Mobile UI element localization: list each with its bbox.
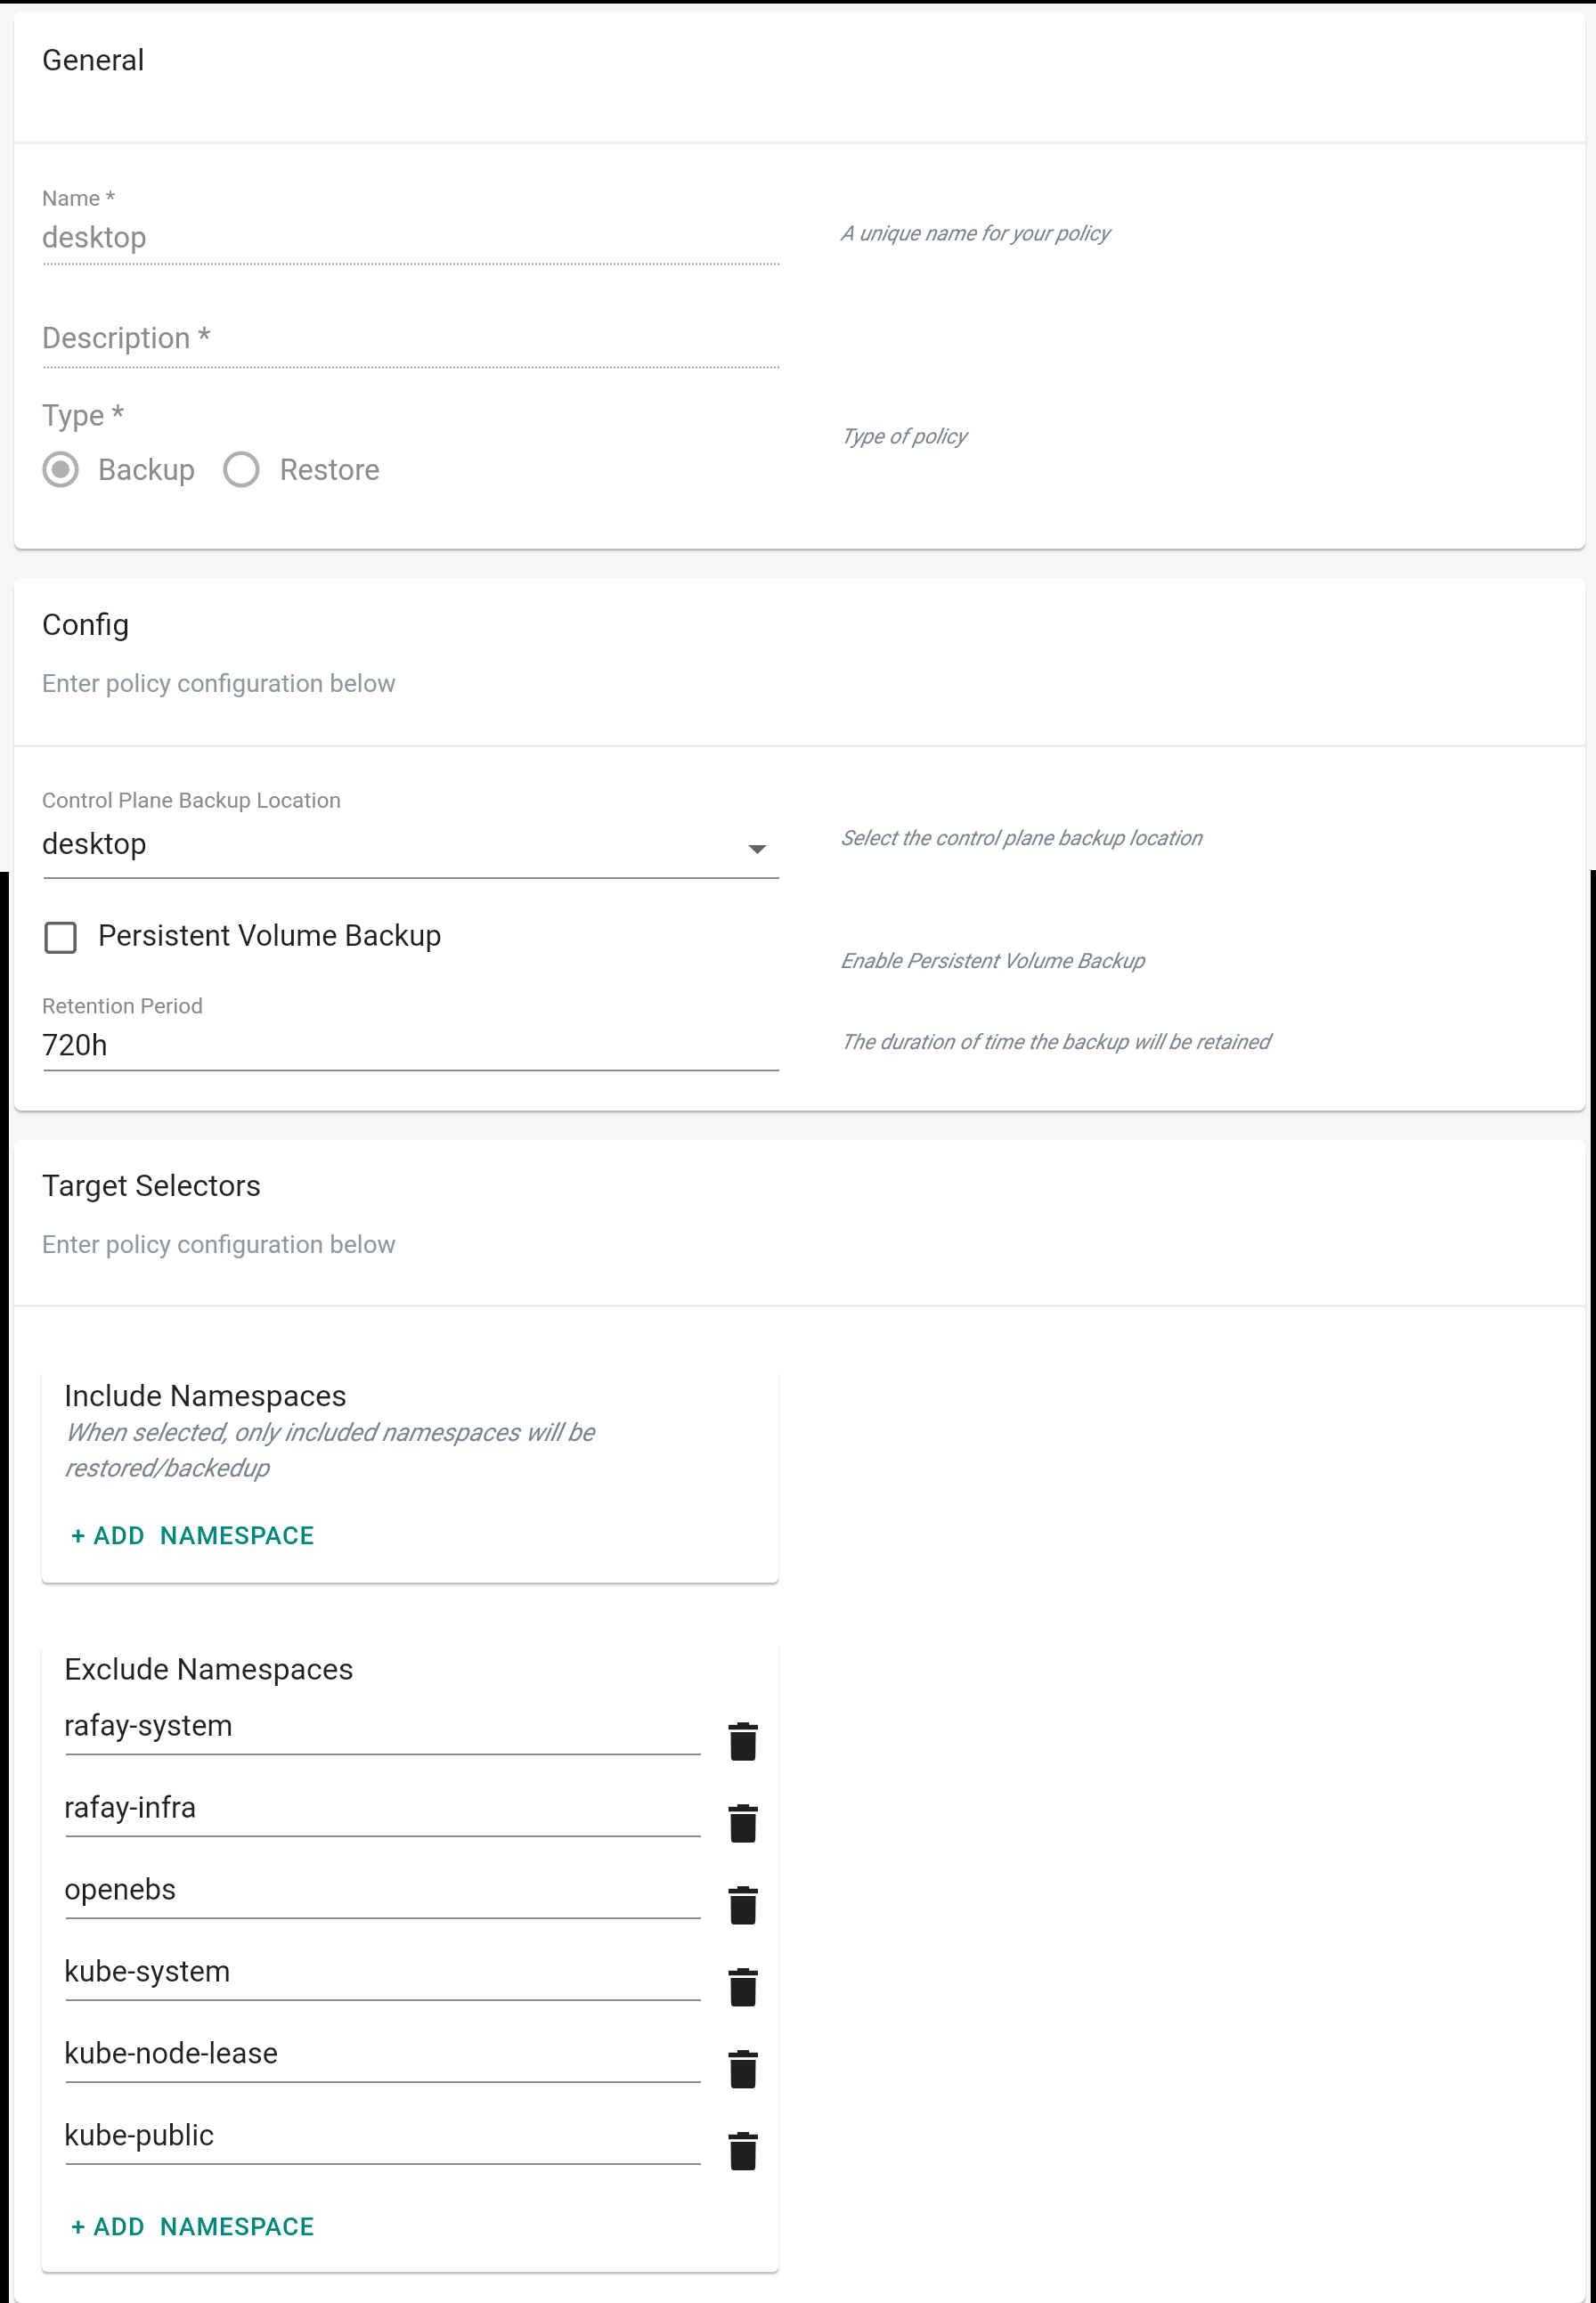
staticText: + ADD NAMESPACE xyxy=(71,1521,315,1550)
staticText: Type * xyxy=(42,398,125,433)
button[interactable]: Delete kube-public xyxy=(713,2118,772,2185)
staticText: Enable Persistent Volume Backup xyxy=(841,948,1145,973)
button[interactable]: + ADD NAMESPACE xyxy=(61,1510,328,1558)
staticText: Restore xyxy=(280,452,380,487)
staticText: Name * xyxy=(42,185,116,211)
staticText: Type of policy xyxy=(841,424,966,449)
staticText: Persistent Volume Backup xyxy=(98,918,443,953)
staticText: Select the control plane backup location xyxy=(841,826,1202,850)
staticText: + ADD NAMESPACE xyxy=(71,2212,315,2242)
staticText: Enter policy configuration below xyxy=(42,1230,396,1259)
button[interactable]: Delete kube-node-lease xyxy=(713,2036,772,2103)
button[interactable]: Delete openebs xyxy=(713,1872,772,1939)
staticText: kube-node-lease xyxy=(64,2036,279,2071)
staticText: Control Plane Backup Location xyxy=(42,787,342,813)
staticText: General xyxy=(42,42,145,77)
staticText: Include Namespaces xyxy=(64,1378,347,1413)
staticText: Exclude Namespaces xyxy=(64,1651,354,1687)
button[interactable]: + ADD NAMESPACE xyxy=(61,2201,328,2250)
button[interactable]: Delete rafay-system xyxy=(713,1708,772,1775)
staticText: desktop xyxy=(42,220,147,255)
button[interactable]: Delete rafay-infra xyxy=(713,1790,772,1857)
staticText: 720h xyxy=(42,1028,108,1062)
button[interactable]: Delete kube-system xyxy=(713,1954,772,2021)
staticText: rafay-infra xyxy=(64,1790,197,1825)
staticText: kube-public xyxy=(64,2118,215,2152)
staticText: Enter policy configuration below xyxy=(42,669,396,698)
staticText: A unique name for your policy xyxy=(841,221,1110,246)
button[interactable]: rafay-system xyxy=(66,1707,701,1757)
button[interactable]: Description xyxy=(44,319,779,369)
staticText: kube-system xyxy=(64,1954,231,1989)
staticText: Retention Period xyxy=(42,993,204,1019)
staticText: The duration of time the backup will be … xyxy=(841,1029,1270,1054)
staticText: desktop xyxy=(42,826,147,861)
staticText: Config xyxy=(42,606,130,642)
staticText: rafay-system xyxy=(64,1708,233,1743)
staticText: Backup xyxy=(98,452,196,487)
button[interactable]: kube-node-lease xyxy=(66,2035,701,2085)
button[interactable]: Control Plane Backup Location xyxy=(44,819,779,880)
button[interactable] xyxy=(216,443,444,496)
staticText: Target Selectors xyxy=(42,1168,262,1203)
button[interactable]: openebs xyxy=(66,1871,701,1921)
button[interactable]: kube-public xyxy=(66,2117,701,2167)
button[interactable] xyxy=(35,443,262,496)
button[interactable]: Name xyxy=(44,183,779,264)
button[interactable]: kube-system xyxy=(66,1953,701,2003)
button[interactable]: Retention Period xyxy=(44,990,779,1072)
staticText: Description * xyxy=(42,321,211,355)
button[interactable]: Persistent Volume Backup xyxy=(36,913,85,963)
staticText: openebs xyxy=(64,1872,177,1907)
button[interactable]: rafay-infra xyxy=(66,1789,701,1839)
staticText: When selected, only included namespaces … xyxy=(65,1418,608,1483)
